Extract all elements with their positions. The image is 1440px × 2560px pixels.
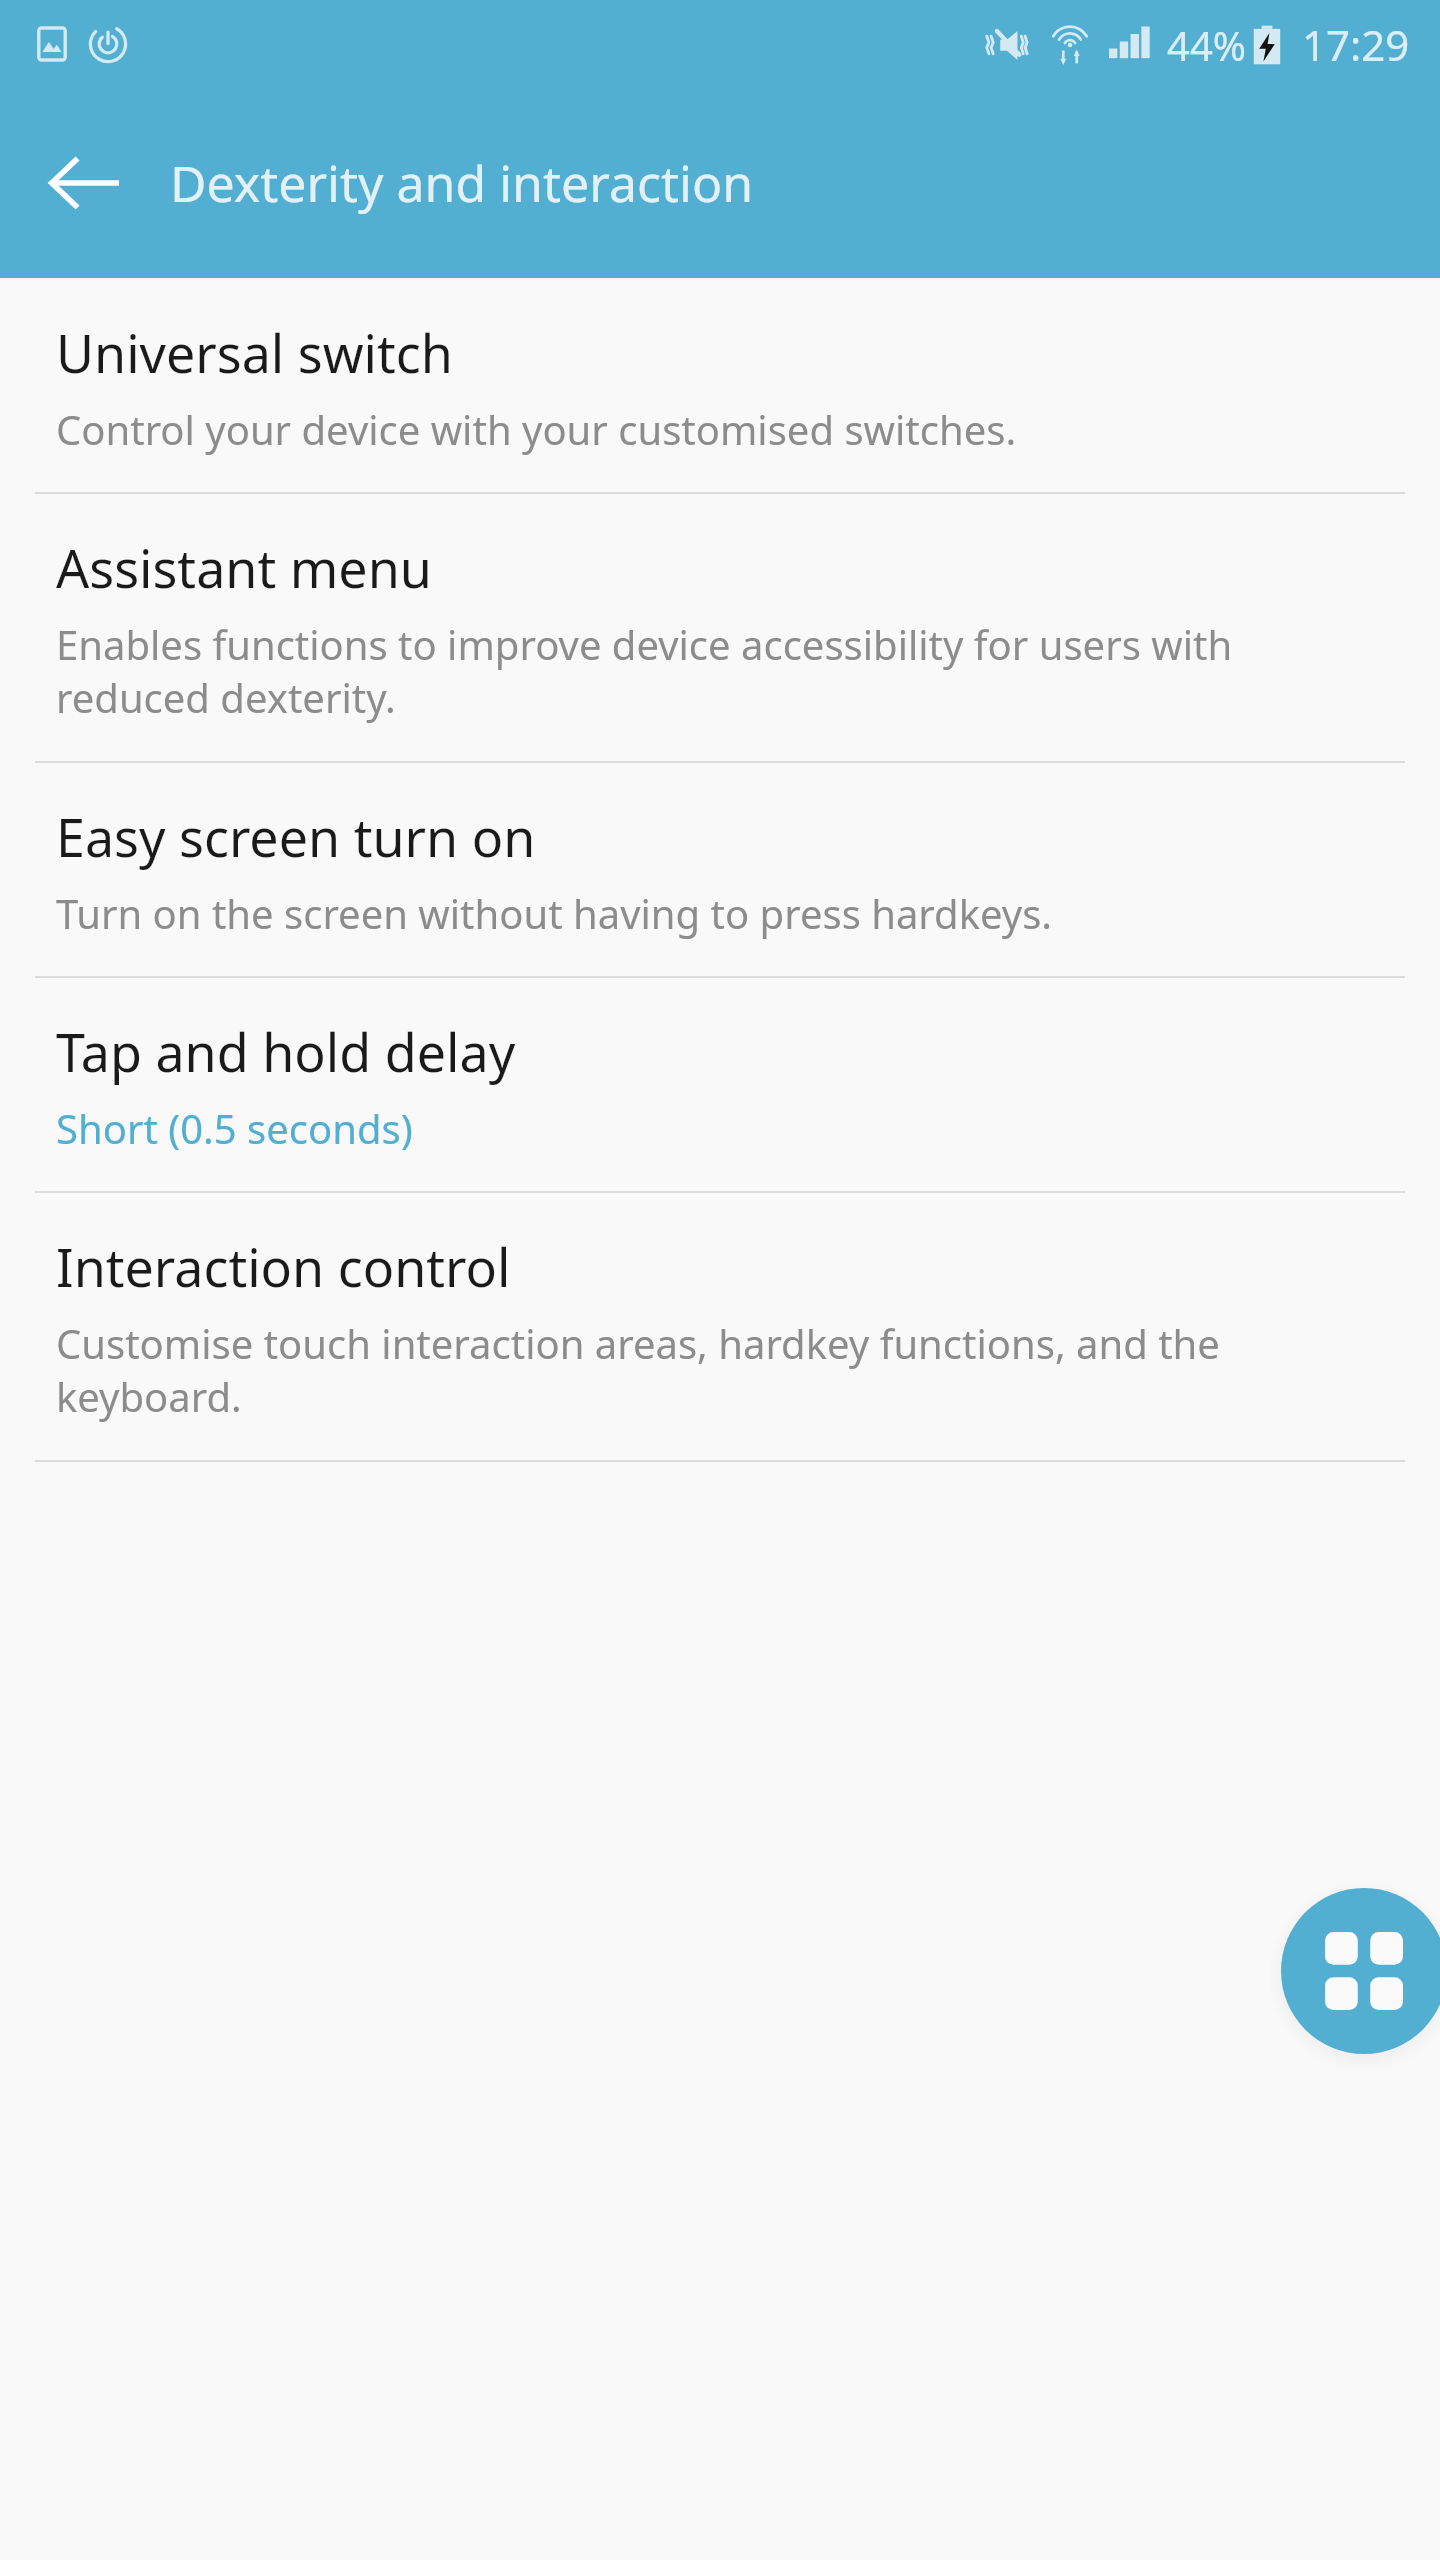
staticText: Interaction control — [56, 1231, 511, 1302]
staticText: Turn on the screen without having to pre… — [56, 886, 1053, 940]
button[interactable]: Assistant menu — [0, 494, 1440, 761]
staticText: 44% — [1167, 18, 1246, 72]
staticText: Assistant menu — [56, 532, 432, 603]
staticText: Universal switch — [56, 317, 453, 388]
staticText: Customise touch interaction areas, hardk… — [56, 1316, 1390, 1424]
staticText: Enables functions to improve device acce… — [56, 617, 1390, 725]
button[interactable]: Universal switch — [0, 279, 1440, 492]
staticText: Tap and hold delay — [56, 1016, 516, 1087]
staticText: Control your device with your customised… — [56, 402, 1017, 456]
staticText: Dexterity and interaction — [170, 149, 754, 217]
button[interactable]: Interaction control — [0, 1193, 1440, 1460]
button[interactable]: Easy screen turn on — [0, 763, 1440, 976]
staticText: 17:29 — [1302, 16, 1410, 73]
button[interactable]: Apps — [1281, 1888, 1440, 2054]
button[interactable]: Back — [30, 128, 140, 238]
staticText: Easy screen turn on — [56, 801, 536, 872]
staticText: Short (0.5 seconds) — [56, 1101, 413, 1155]
button[interactable]: Tap and hold delay — [0, 978, 1440, 1191]
